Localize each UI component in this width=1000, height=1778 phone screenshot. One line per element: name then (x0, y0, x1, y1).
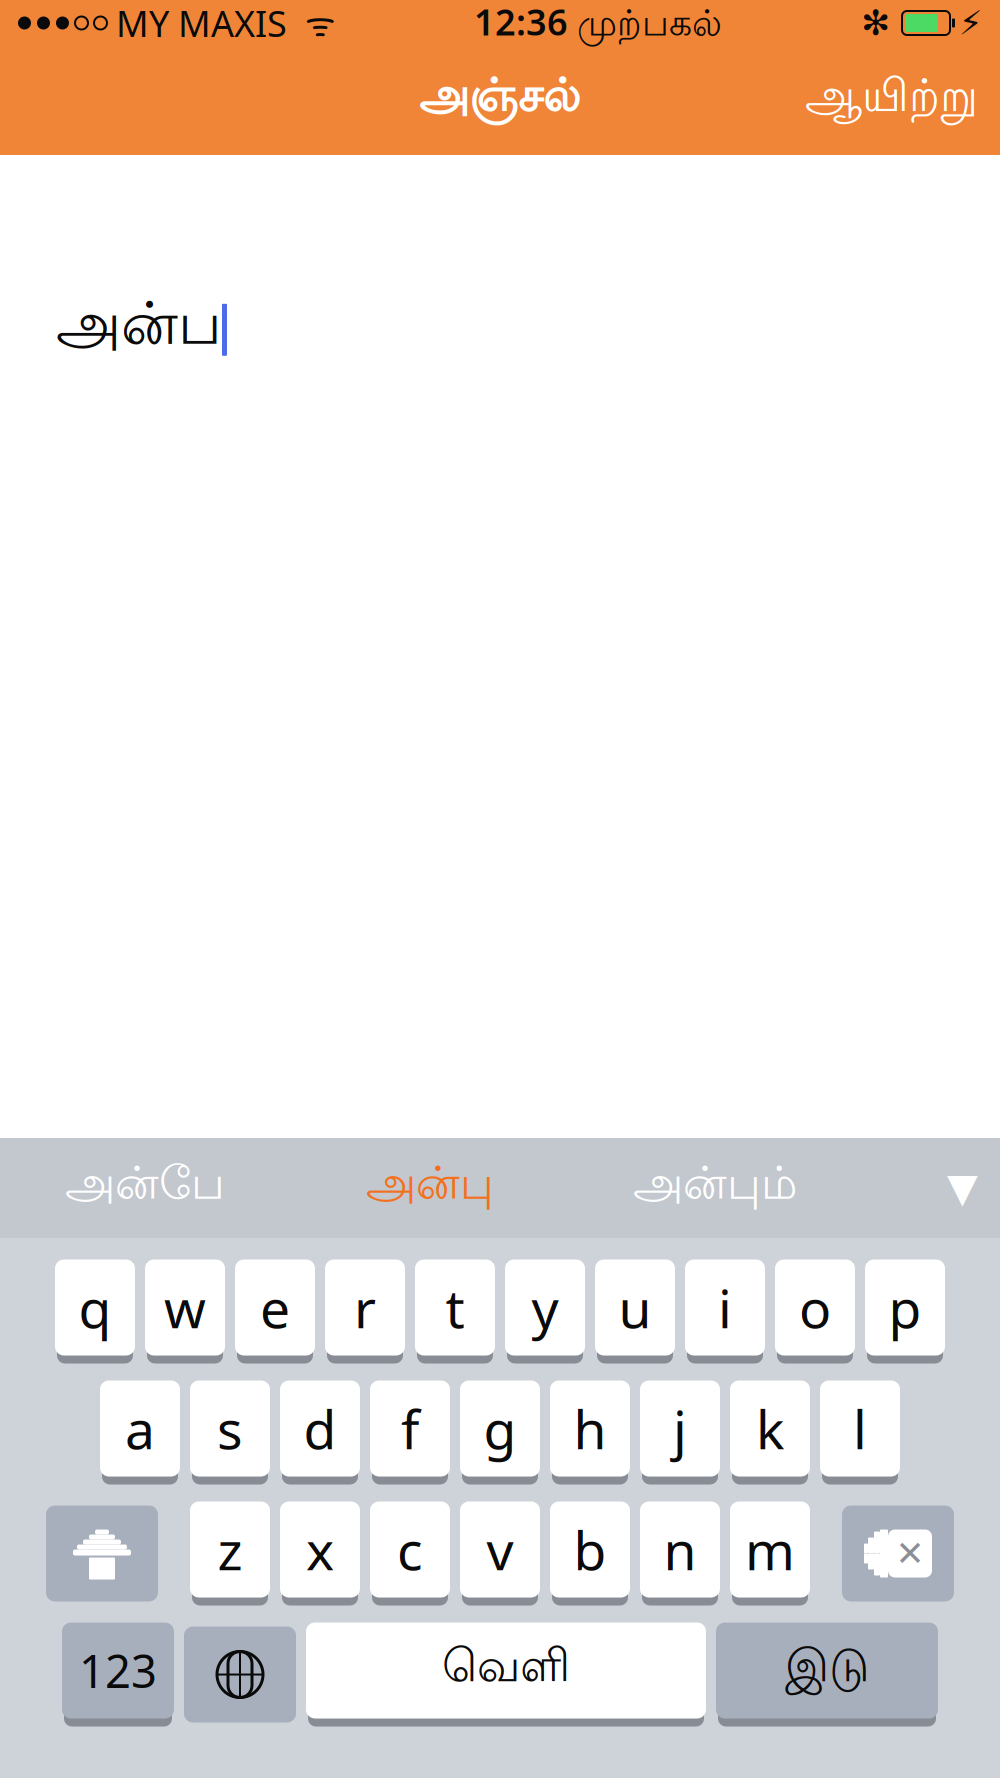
button[interactable]: b (550, 1504, 630, 1603)
staticText: t (445, 1272, 464, 1343)
staticText: i (718, 1272, 732, 1343)
button[interactable]: n (640, 1504, 720, 1603)
staticText: ஆயிற்று (805, 74, 978, 127)
button[interactable]: அன்பே (0, 1138, 290, 1238)
staticText: MY MAXIS (107, 0, 287, 47)
staticText: ᯤ (287, 1, 335, 45)
button[interactable]: a (100, 1383, 180, 1482)
staticText: 12:36 முற்பகல் (474, 0, 722, 48)
button[interactable]: Return (716, 1625, 938, 1724)
button[interactable]: m (730, 1504, 810, 1603)
staticText: p (888, 1272, 921, 1343)
staticText: v (486, 1514, 513, 1585)
button[interactable]: q (55, 1262, 135, 1361)
staticText: h (573, 1393, 606, 1464)
button[interactable]: o (775, 1262, 855, 1361)
button[interactable]: p (865, 1262, 945, 1361)
button[interactable]: ஆயிற்று (791, 64, 992, 137)
button[interactable]: அன்பு (290, 1138, 570, 1238)
staticText: 123 (79, 1640, 157, 1701)
staticText: u (618, 1272, 651, 1343)
button[interactable]: h (550, 1383, 630, 1482)
staticText: வெளி (442, 1644, 570, 1697)
button[interactable]: y (505, 1262, 585, 1361)
button[interactable]: Hide suggestions (947, 1138, 1000, 1238)
staticText: c (397, 1514, 423, 1585)
button[interactable]: u (595, 1262, 675, 1361)
button[interactable]: d (280, 1383, 360, 1482)
staticText: f (401, 1393, 419, 1464)
button[interactable]: x (280, 1504, 360, 1603)
staticText: g (483, 1393, 516, 1464)
staticText: e (260, 1272, 290, 1343)
button[interactable]: Space (306, 1625, 706, 1724)
button[interactable]: Numbers (62, 1625, 174, 1724)
staticText: ✻ (861, 3, 890, 43)
staticText: y (531, 1272, 558, 1343)
staticText: x (306, 1514, 334, 1585)
button[interactable]: e (235, 1262, 315, 1361)
button[interactable]: l (820, 1383, 900, 1482)
staticText: n (663, 1514, 696, 1585)
staticText: ▼ (947, 1165, 978, 1211)
button[interactable]: v (460, 1504, 540, 1603)
staticText: ⚡︎ (959, 4, 982, 42)
staticText: இடு (785, 1644, 869, 1697)
button[interactable]: k (730, 1383, 810, 1482)
staticText: அன்பும் (633, 1161, 797, 1215)
button[interactable]: j (640, 1383, 720, 1482)
staticText: m (745, 1514, 795, 1585)
button[interactable]: g (460, 1383, 540, 1482)
staticText: a (125, 1393, 155, 1464)
staticText: k (756, 1393, 784, 1464)
button[interactable]: z (190, 1504, 270, 1603)
button[interactable]: Next keyboard (184, 1625, 296, 1724)
staticText: அன்பு (366, 1161, 494, 1215)
staticText: l (853, 1393, 867, 1464)
staticText: z (217, 1514, 242, 1585)
staticText: j (673, 1393, 687, 1464)
button[interactable]: c (370, 1504, 450, 1603)
staticText: d (303, 1393, 336, 1464)
staticText: q (78, 1272, 111, 1343)
button[interactable]: f (370, 1383, 450, 1482)
staticText: b (573, 1514, 606, 1585)
button[interactable]: t (415, 1262, 495, 1361)
button[interactable]: Shift (46, 1504, 158, 1603)
button[interactable]: r (325, 1262, 405, 1361)
staticText: அன்பே (65, 1161, 225, 1215)
staticText: o (799, 1272, 831, 1343)
button[interactable]: s (190, 1383, 270, 1482)
button[interactable]: i (685, 1262, 765, 1361)
staticText: w (164, 1272, 206, 1343)
staticText: அஞ்சல் (419, 74, 581, 127)
staticText: s (217, 1393, 243, 1464)
staticText: r (354, 1272, 376, 1343)
button[interactable]: அன்பும் (570, 1138, 860, 1238)
staticText: அன்ப (56, 295, 222, 365)
button[interactable]: w (145, 1262, 225, 1361)
button[interactable]: Delete (842, 1504, 954, 1603)
staticText: ✕ (895, 1534, 924, 1573)
